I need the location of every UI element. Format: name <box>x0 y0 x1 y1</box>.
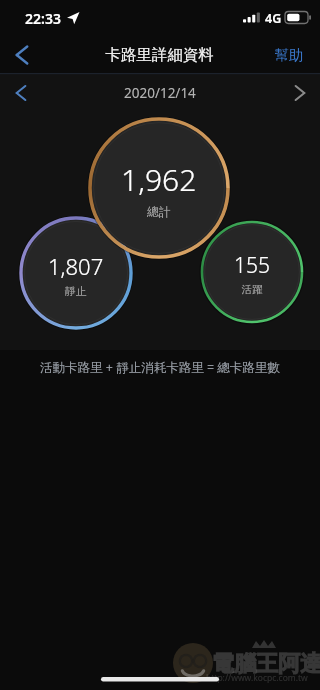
button[interactable] <box>264 40 314 70</box>
button[interactable] <box>21 218 131 328</box>
button[interactable] <box>90 119 228 257</box>
button[interactable]: Back <box>4 40 44 70</box>
button[interactable]: Previous day <box>4 80 42 108</box>
button[interactable]: Next day <box>278 80 316 108</box>
button[interactable] <box>202 222 302 322</box>
